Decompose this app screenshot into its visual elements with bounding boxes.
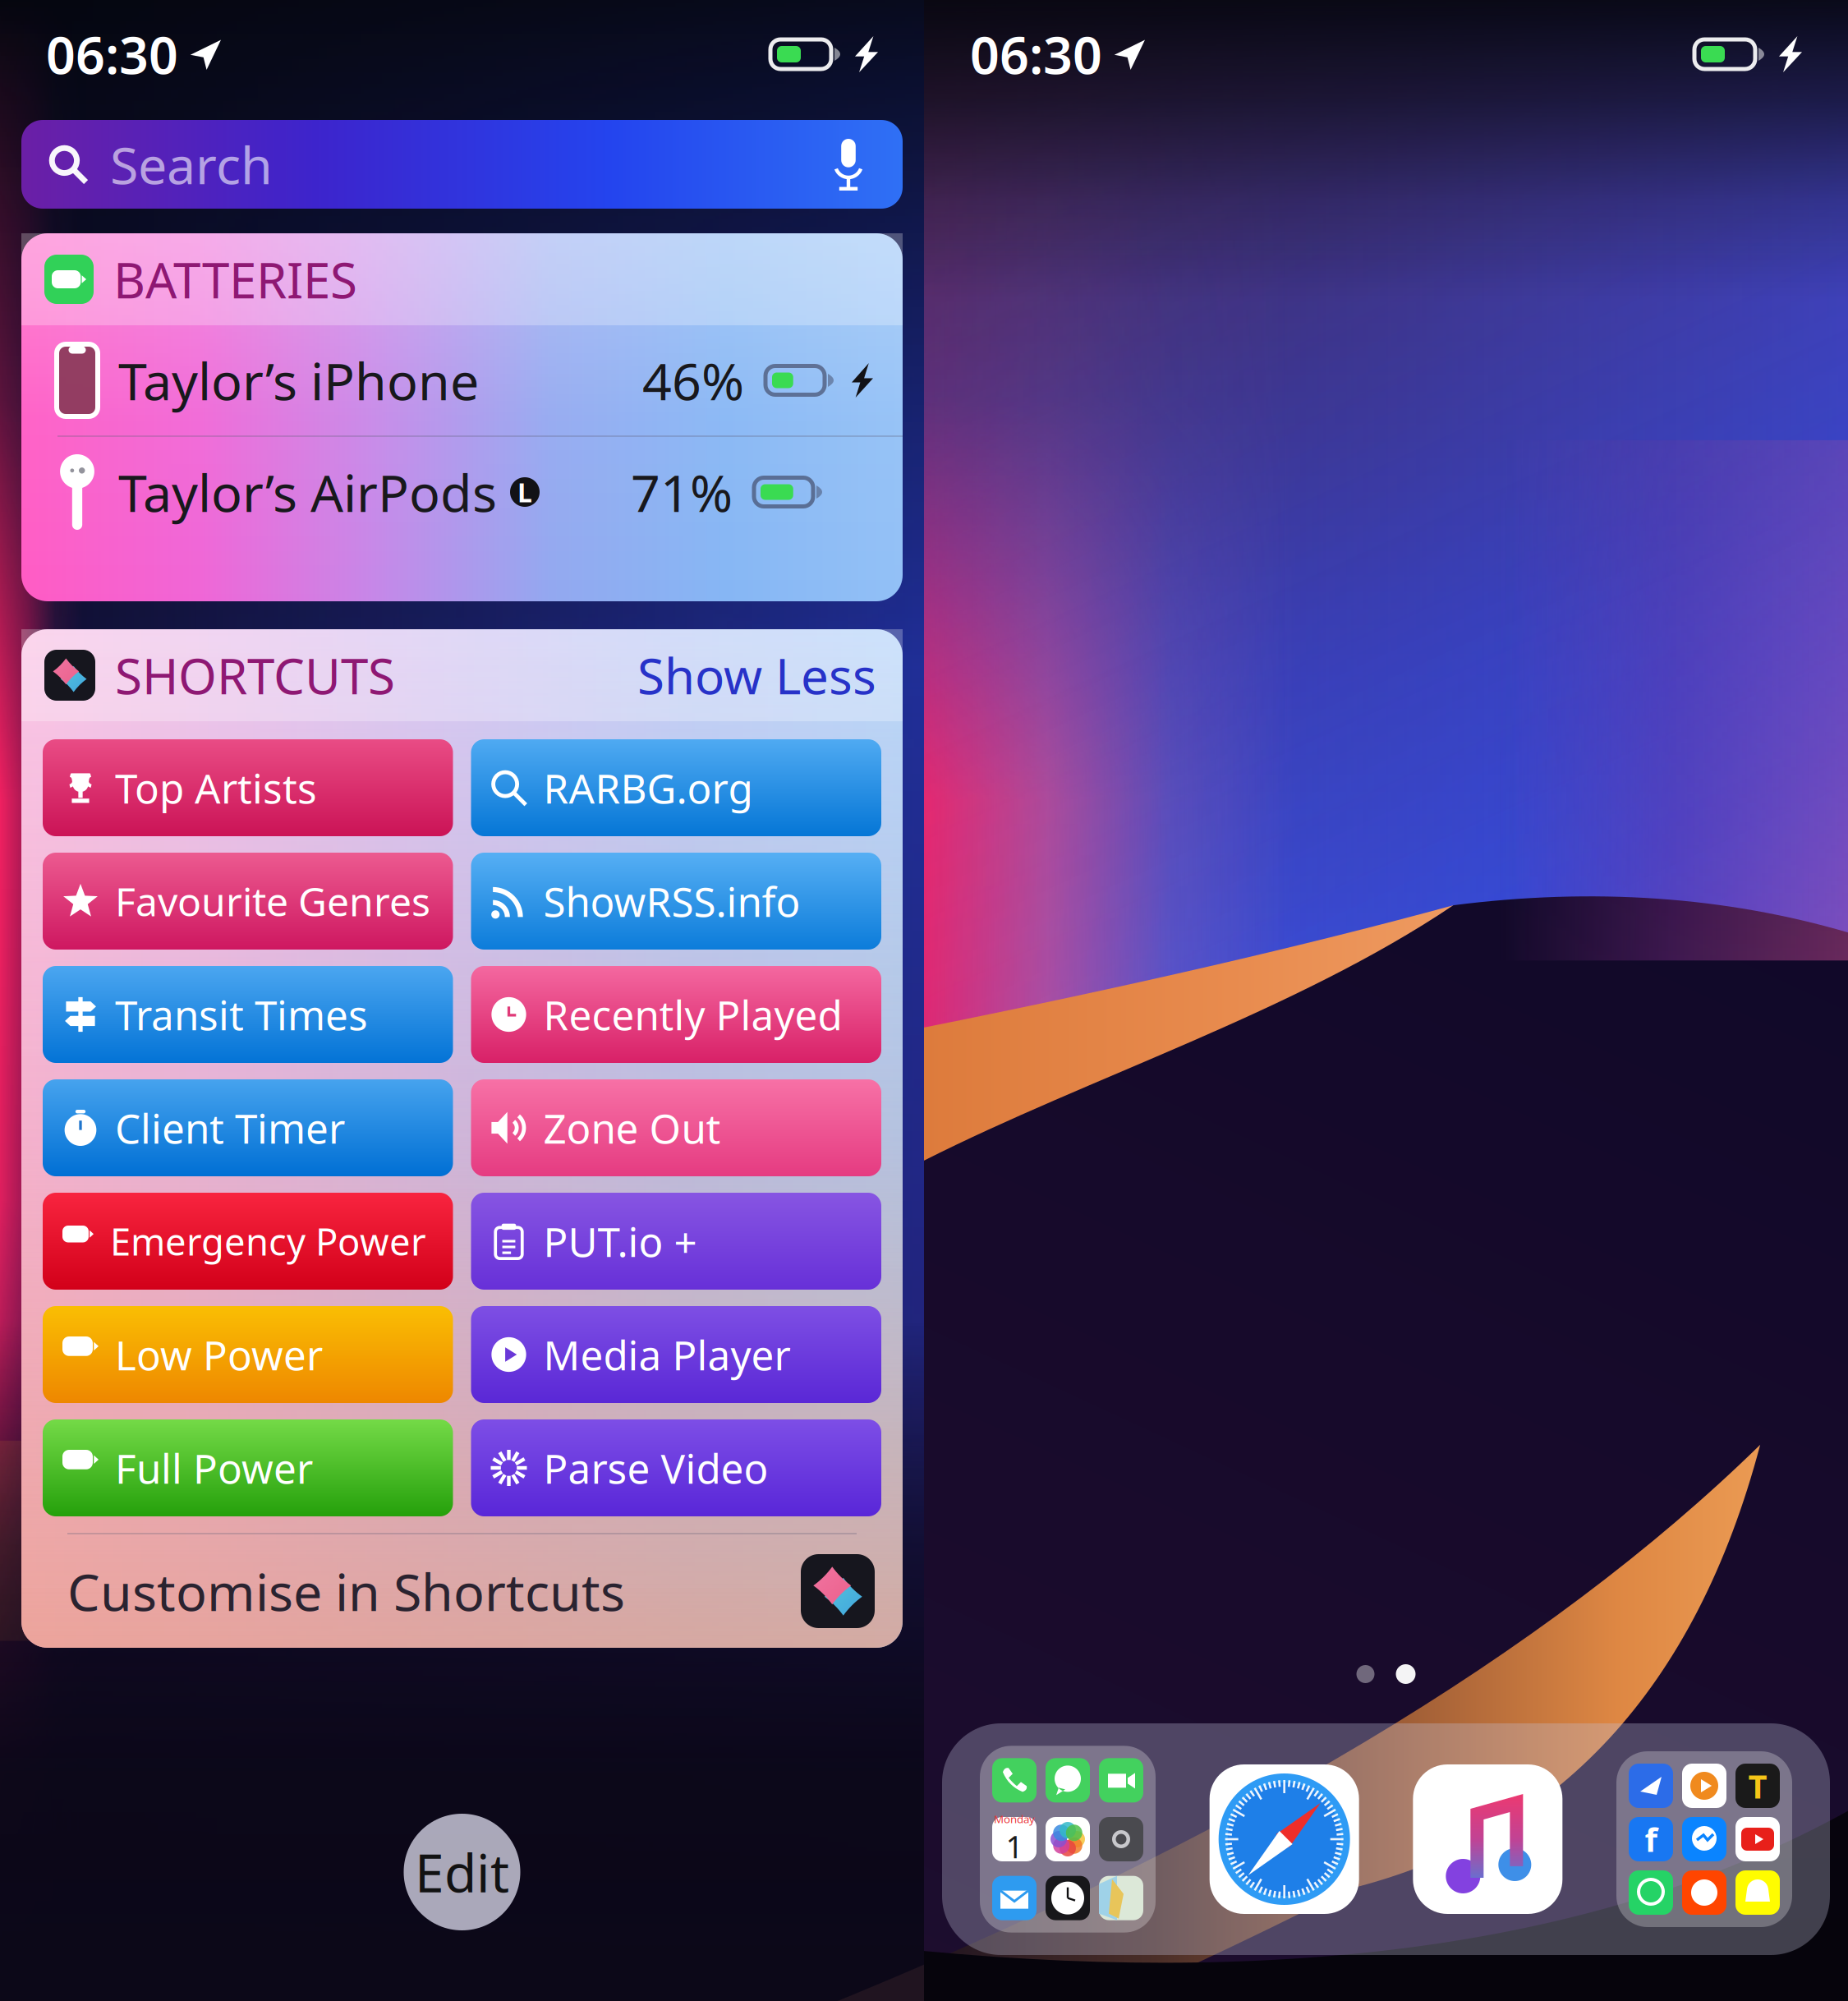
staticText: 71%	[631, 458, 733, 526]
button[interactable]: Recently Played	[471, 966, 881, 1063]
staticText: Taylor’s AirPods	[118, 458, 497, 526]
button[interactable]: Top Artists	[43, 739, 453, 836]
staticText: Media Player	[543, 1328, 791, 1381]
button[interactable]: ShowRSS.info	[471, 853, 881, 950]
staticText: 1	[1006, 1826, 1023, 1867]
button[interactable]: Transit Times	[43, 966, 453, 1063]
staticText: RARBG.org	[543, 761, 753, 815]
button[interactable]: Safari	[1210, 1764, 1359, 1914]
button[interactable]: RARBG.org	[471, 739, 881, 836]
staticText: ShowRSS.info	[543, 874, 800, 928]
button[interactable]: Full Power	[43, 1419, 453, 1516]
staticText: Search	[110, 130, 273, 198]
staticText: Recently Played	[543, 988, 842, 1041]
button[interactable]: Parse Video	[471, 1419, 881, 1516]
staticText: Show Less	[637, 643, 876, 708]
staticText: Emergency Power	[110, 1216, 426, 1266]
staticText: BATTERIES	[113, 247, 357, 312]
staticText: Customise in Shortcuts	[67, 1557, 625, 1625]
staticText: 06:30	[46, 20, 178, 88]
staticText: 06:30	[970, 20, 1102, 88]
button[interactable]: Edit	[404, 1814, 520, 1930]
button[interactable]: Utilities folder	[980, 1746, 1156, 1933]
staticText: Taylor’s iPhone	[118, 346, 479, 414]
staticText: L	[517, 475, 532, 510]
button[interactable]: PUT.io +	[471, 1193, 881, 1290]
button[interactable]: Favourite Genres	[43, 853, 453, 950]
button[interactable]: Zone Out	[471, 1079, 881, 1176]
staticText: Zone Out	[543, 1101, 721, 1155]
button[interactable]: Social folder	[1616, 1751, 1792, 1927]
staticText: f	[1645, 1817, 1657, 1861]
staticText: Monday	[994, 1812, 1035, 1826]
staticText: Favourite Genres	[115, 875, 430, 927]
button[interactable]: Music	[1413, 1764, 1562, 1914]
button[interactable]: Client Timer	[43, 1079, 453, 1176]
staticText: Parse Video	[543, 1441, 768, 1495]
staticText: 46%	[642, 346, 744, 414]
button[interactable]: Media Player	[471, 1306, 881, 1403]
staticText: Full Power	[115, 1441, 313, 1495]
button[interactable]: Search	[21, 120, 903, 209]
staticText: Transit Times	[115, 988, 368, 1041]
staticText: T	[1748, 1764, 1767, 1808]
staticText: Top Artists	[115, 761, 317, 815]
staticText: Client Timer	[115, 1101, 345, 1155]
button[interactable]: Emergency Power	[43, 1193, 453, 1290]
button[interactable]: Low Power	[43, 1306, 453, 1403]
button[interactable]: Show Less	[637, 643, 903, 708]
staticText: Edit	[415, 1837, 509, 1907]
staticText: Low Power	[115, 1328, 323, 1381]
staticText: SHORTCUTS	[115, 643, 395, 708]
button[interactable]: Customise in Shortcuts	[21, 1534, 903, 1648]
staticText: PUT.io +	[543, 1214, 697, 1268]
